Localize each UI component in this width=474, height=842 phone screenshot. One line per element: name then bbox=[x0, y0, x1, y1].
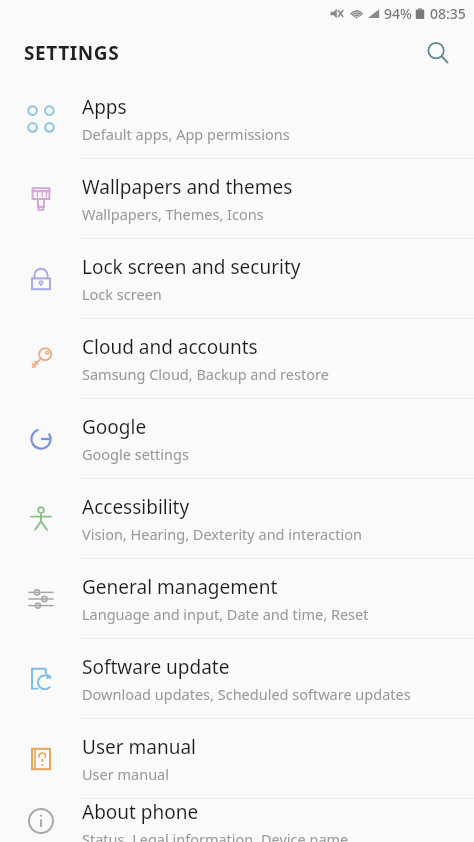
staticText: Wallpapers and themes bbox=[82, 174, 293, 200]
staticText: Vision, Hearing, Dexterity and interacti… bbox=[82, 524, 362, 544]
staticText: Status, Legal information, Device name bbox=[82, 829, 349, 842]
staticText: Software update bbox=[82, 654, 230, 680]
button[interactable]: Cloud and accounts bbox=[0, 319, 474, 398]
staticText: User manual bbox=[82, 764, 169, 784]
button[interactable]: Google bbox=[0, 399, 474, 478]
staticText: Lock screen bbox=[82, 284, 162, 304]
staticText: User manual bbox=[82, 734, 196, 760]
staticText: Lock screen and security bbox=[82, 254, 301, 280]
button[interactable]: General management bbox=[0, 559, 474, 638]
button[interactable]: Wallpapers and themes bbox=[0, 159, 474, 238]
staticText: Google bbox=[82, 414, 147, 440]
staticText: Google settings bbox=[82, 444, 189, 464]
button[interactable]: Search bbox=[416, 31, 460, 75]
button[interactable]: Lock screen and security bbox=[0, 239, 474, 318]
staticText: 08:35 bbox=[430, 4, 466, 23]
staticText: Apps bbox=[82, 94, 127, 120]
button[interactable]: Accessibility bbox=[0, 479, 474, 558]
staticText: Wallpapers, Themes, Icons bbox=[82, 204, 264, 224]
button[interactable]: About phone bbox=[0, 799, 474, 842]
staticText: 94% bbox=[384, 4, 412, 23]
staticText: Cloud and accounts bbox=[82, 334, 258, 360]
button[interactable]: Software update bbox=[0, 639, 474, 718]
staticText: General management bbox=[82, 574, 278, 600]
staticText: Accessibility bbox=[82, 494, 190, 520]
staticText: Download updates, Scheduled software upd… bbox=[82, 684, 411, 704]
staticText: Language and input, Date and time, Reset bbox=[82, 604, 369, 624]
button[interactable]: User manual bbox=[0, 719, 474, 798]
button[interactable]: Apps bbox=[0, 80, 474, 158]
staticText: Default apps, App permissions bbox=[82, 124, 290, 144]
staticText: SETTINGS bbox=[24, 40, 120, 66]
staticText: About phone bbox=[82, 799, 199, 825]
staticText: Samsung Cloud, Backup and restore bbox=[82, 364, 329, 384]
